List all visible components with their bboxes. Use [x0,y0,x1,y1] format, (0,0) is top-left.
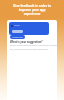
staticText: What is your suggestion? [10,40,43,44]
staticText: Suggestion [12,36,24,39]
button[interactable] [9,22,49,35]
button[interactable]: Suggestion [10,35,25,39]
staticText: Give feedback in order to improve your a… [13,4,51,16]
staticText: Lorem ipsum dolor sit amet, consectetur … [10,44,57,47]
staticText: elit, sed do eiusmod tempor incididunt. [10,48,49,51]
